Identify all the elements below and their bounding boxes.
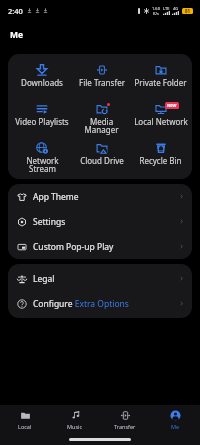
button[interactable]: Legal xyxy=(8,266,192,291)
staticText: 1.60 xyxy=(152,6,160,11)
button[interactable]: Me xyxy=(150,405,200,434)
staticText: File Transfer xyxy=(79,77,125,88)
staticText: Me xyxy=(10,29,24,41)
button[interactable]: Cloud Drive xyxy=(72,136,131,175)
staticText: Local xyxy=(18,423,32,430)
staticText: 4G xyxy=(173,6,179,11)
button[interactable]: Video Playlists xyxy=(12,97,72,136)
staticText: Private Folder xyxy=(134,77,187,88)
button[interactable]: Configure Extra Options xyxy=(8,291,192,316)
button[interactable]: Music xyxy=(50,405,100,434)
button[interactable]: File Transfer xyxy=(72,58,131,97)
staticText: LTE xyxy=(163,6,170,11)
button[interactable]: App Theme xyxy=(8,184,192,209)
staticText: Transfer xyxy=(114,423,136,430)
button[interactable]: NEW xyxy=(131,97,190,136)
staticText: Video Playlists xyxy=(15,116,69,127)
button[interactable]: Media Manager xyxy=(72,97,131,136)
staticText: 81 xyxy=(185,8,191,14)
staticText: Custom Pop-up Play xyxy=(33,241,114,253)
button[interactable]: Private Folder xyxy=(131,58,190,97)
staticText: Cloud Drive xyxy=(80,155,124,166)
button[interactable]: Recycle Bin xyxy=(131,136,190,175)
staticText: App Theme xyxy=(33,191,79,203)
staticText: Settings xyxy=(33,216,66,228)
button[interactable]: Downloads xyxy=(12,58,72,97)
staticText: Local Network xyxy=(134,116,188,127)
staticText: Recycle Bin xyxy=(139,155,182,166)
staticText: Configure Extra Options xyxy=(33,298,129,310)
button[interactable]: Network Stream xyxy=(12,136,72,175)
button[interactable]: Transfer xyxy=(100,405,150,434)
button[interactable]: Custom Pop-up Play xyxy=(8,234,192,259)
staticText: Legal xyxy=(33,273,55,285)
staticText: 2:40 xyxy=(8,6,23,15)
staticText: Me xyxy=(171,423,180,430)
staticText: Network Stream xyxy=(26,155,59,174)
staticText: Media Manager xyxy=(72,116,131,135)
staticText: NEW xyxy=(167,103,177,108)
button[interactable]: Local xyxy=(0,405,50,434)
staticText: Music xyxy=(67,423,83,430)
button[interactable]: Settings xyxy=(8,209,192,234)
staticText: Downloads xyxy=(21,77,63,88)
staticText: K/s xyxy=(153,11,159,15)
